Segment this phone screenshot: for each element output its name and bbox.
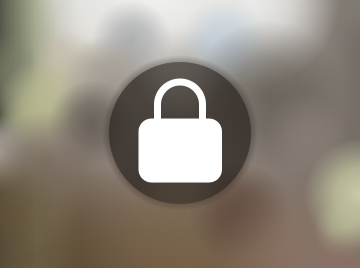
button[interactable]: Locked content (0, 0, 360, 268)
